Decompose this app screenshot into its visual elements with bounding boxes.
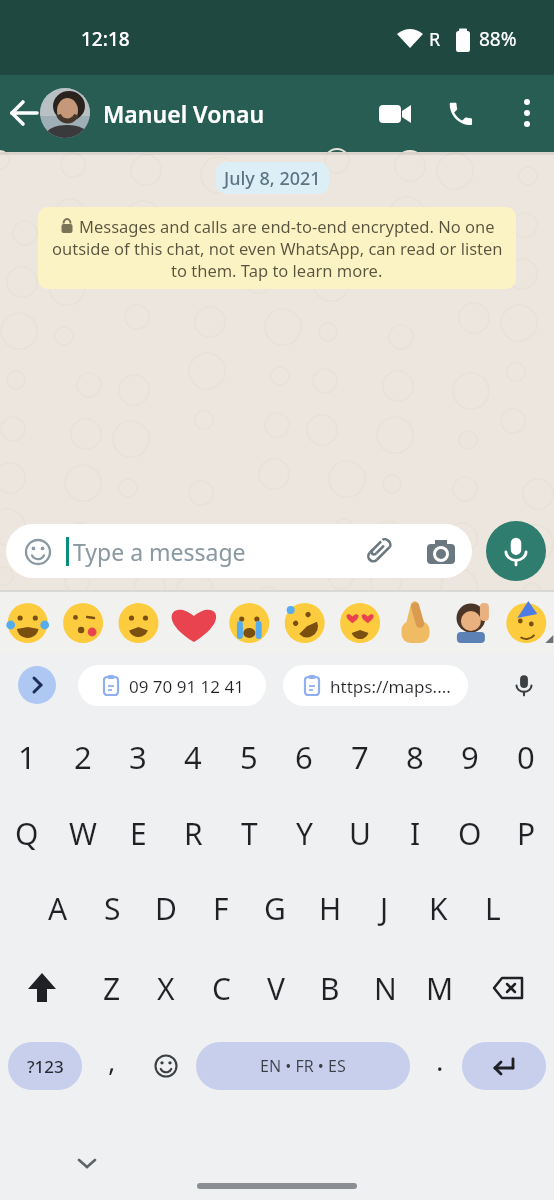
staticText: O	[458, 813, 482, 854]
button[interactable]: M	[413, 957, 467, 1019]
staticText: M	[426, 968, 454, 1009]
button[interactable]	[437, 90, 485, 138]
staticText: A	[48, 888, 68, 929]
button[interactable]: .	[413, 1029, 467, 1091]
staticText: 12:18	[81, 26, 130, 52]
button[interactable]: R	[166, 802, 220, 864]
button[interactable]: W	[56, 802, 110, 864]
button[interactable]: K	[411, 877, 465, 939]
staticText: Q	[15, 813, 39, 854]
button[interactable]: 0	[499, 726, 553, 788]
staticText: 88%	[479, 26, 517, 52]
staticText: .	[436, 1041, 444, 1079]
button[interactable]: D	[139, 877, 193, 939]
staticText: 3	[129, 736, 147, 778]
button[interactable]: U	[333, 802, 387, 864]
staticText: 7	[351, 736, 369, 778]
button[interactable]	[504, 90, 550, 136]
button[interactable]: 7	[333, 726, 387, 788]
staticText: Y	[296, 813, 313, 854]
staticText: EN • FR • ES	[260, 1055, 346, 1077]
button[interactable]: H	[303, 877, 357, 939]
button[interactable]: Q	[0, 802, 54, 864]
staticText: S	[104, 888, 121, 929]
button[interactable]: B	[303, 957, 357, 1019]
button[interactable]: E	[111, 802, 165, 864]
button[interactable]: A	[31, 877, 85, 939]
staticText: J	[380, 888, 389, 929]
staticText: July 8, 2021	[224, 166, 321, 191]
button[interactable]: ?123	[8, 1042, 82, 1090]
staticText: ?123	[27, 1055, 64, 1078]
button[interactable]: C	[194, 957, 248, 1019]
staticText: R	[184, 813, 203, 854]
staticText: Manuel Vonau	[103, 98, 265, 129]
staticText: X	[157, 968, 175, 1009]
staticText: F	[213, 888, 229, 929]
button[interactable]: X	[139, 957, 193, 1019]
button[interactable]: T	[222, 802, 276, 864]
button[interactable]: 2	[56, 726, 110, 788]
button[interactable]	[4, 92, 46, 134]
staticText: R	[429, 27, 441, 52]
button[interactable]	[486, 521, 546, 581]
staticText: I	[410, 813, 421, 854]
button[interactable]	[18, 666, 56, 704]
staticText: 1	[18, 736, 36, 778]
staticText: U	[349, 813, 371, 854]
staticText: https://maps....	[330, 675, 451, 698]
button[interactable]: 4	[166, 726, 220, 788]
button[interactable]	[69, 1147, 105, 1179]
button[interactable]: G	[248, 877, 302, 939]
button[interactable]	[422, 533, 460, 571]
staticText: 09 70 91 12 41	[129, 675, 244, 698]
staticText: 9	[461, 736, 479, 778]
button[interactable]: L	[466, 877, 520, 939]
button[interactable]: 5	[222, 726, 276, 788]
button[interactable]: J	[357, 877, 411, 939]
button[interactable]	[146, 1046, 186, 1086]
staticText: Z	[103, 968, 121, 1009]
button[interactable]: N	[358, 957, 412, 1019]
button[interactable]	[360, 533, 398, 571]
button[interactable]: ,	[85, 1029, 139, 1091]
button[interactable]	[6, 524, 472, 578]
staticText: L	[485, 888, 501, 929]
button[interactable]: 6	[277, 726, 331, 788]
button[interactable]: EN • FR • ES	[196, 1042, 410, 1090]
button[interactable]: S	[85, 877, 139, 939]
button[interactable]: 8	[388, 726, 442, 788]
staticText: V	[267, 968, 285, 1009]
staticText: G	[264, 888, 286, 929]
button[interactable]: V	[249, 957, 303, 1019]
button[interactable]: O	[443, 802, 497, 864]
button[interactable]	[38, 207, 516, 289]
button[interactable]: Z	[85, 957, 139, 1019]
button[interactable]: F	[194, 877, 248, 939]
staticText: 6	[295, 736, 313, 778]
button[interactable]: 3	[111, 726, 165, 788]
button[interactable]	[371, 90, 419, 138]
staticText: Messages and calls are end-to-end encryp…	[79, 215, 495, 237]
button[interactable]	[480, 960, 536, 1016]
button[interactable]: I	[388, 802, 442, 864]
staticText: ,	[108, 1041, 116, 1079]
button[interactable]: Y	[277, 802, 331, 864]
button[interactable]: 1	[0, 726, 54, 788]
button[interactable]	[40, 88, 90, 138]
button[interactable]	[462, 1042, 546, 1090]
button[interactable]: P	[499, 802, 553, 864]
staticText: N	[374, 968, 397, 1009]
button[interactable]: 09 70 91 12 41	[78, 665, 266, 706]
button[interactable]: July 8, 2021	[216, 162, 329, 194]
staticText: D	[155, 888, 177, 929]
button[interactable]: 9	[443, 726, 497, 788]
button[interactable]: https://maps....	[283, 665, 468, 706]
staticText: 4	[184, 736, 202, 778]
staticText: 8	[406, 736, 424, 778]
button[interactable]	[506, 667, 542, 703]
staticText: 5	[240, 736, 258, 778]
staticText: outside of this chat, not even WhatsApp,…	[52, 237, 503, 259]
button[interactable]	[14, 960, 70, 1016]
staticText: P	[517, 813, 536, 854]
